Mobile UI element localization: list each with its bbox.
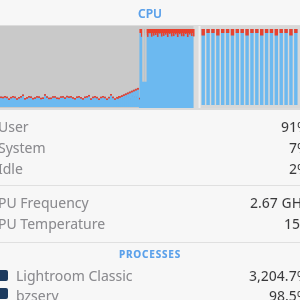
staticText: 156	[284, 214, 300, 233]
other: Lightroom Classic icon	[0, 270, 8, 281]
staticText: 98.5%	[269, 286, 300, 300]
staticText: PU Temperature	[0, 214, 106, 233]
button[interactable]: Idle	[0, 158, 300, 179]
staticText: PROCESSES	[119, 247, 182, 261]
button[interactable]: bzserv icon	[0, 286, 300, 300]
button[interactable]: PU Frequency	[0, 192, 300, 213]
button[interactable]: User	[0, 116, 300, 137]
button[interactable]: PROCESSES	[0, 243, 300, 265]
other: bzserv icon	[0, 288, 8, 299]
button[interactable]: CPU	[0, 0, 300, 25]
staticText: 2.67 GHz	[250, 193, 300, 212]
staticText: 3,204.7%	[249, 266, 300, 285]
staticText: 7%	[289, 138, 300, 157]
staticText: System	[0, 138, 46, 157]
button[interactable]: Lightroom Classic icon	[0, 265, 300, 286]
button[interactable]: PU Temperature	[0, 213, 300, 234]
button[interactable]: System	[0, 137, 300, 158]
staticText: 91%	[281, 117, 300, 136]
staticText: 2%	[289, 159, 300, 178]
staticText: Lightroom Classic	[16, 266, 133, 285]
staticText: Idle	[0, 159, 23, 178]
staticText: PU Frequency	[0, 193, 89, 212]
staticText: CPU	[138, 5, 163, 21]
staticText: bzserv	[16, 286, 59, 300]
staticText: User	[0, 117, 29, 136]
